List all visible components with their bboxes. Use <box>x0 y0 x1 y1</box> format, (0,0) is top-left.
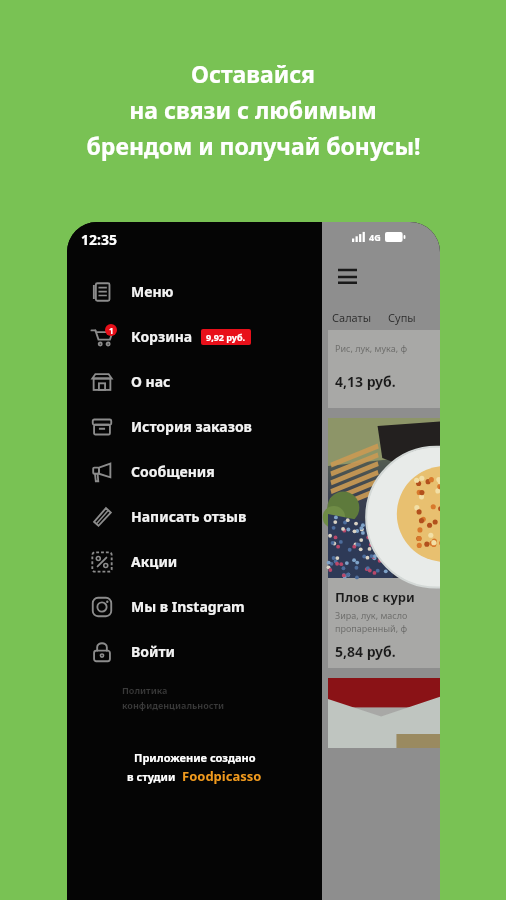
staticText: Рис, лук, мука, ф <box>335 342 408 354</box>
button[interactable]: Салаты <box>332 310 372 325</box>
staticText: Меню <box>131 282 174 301</box>
staticText: 1 <box>109 325 114 336</box>
button[interactable]: Мы в Instagram <box>67 584 322 629</box>
button[interactable]: Плов с кури <box>328 418 440 668</box>
button[interactable]: Сообщения <box>67 449 322 494</box>
button[interactable]: История заказов <box>67 404 322 449</box>
staticText: Написать отзыв <box>131 507 247 526</box>
button[interactable]: О нас <box>67 359 322 404</box>
staticText: Плов с кури <box>335 588 415 606</box>
button[interactable]: Супы <box>388 310 416 325</box>
button[interactable]: Акции <box>67 539 322 584</box>
staticText: 12:35 <box>81 230 117 249</box>
staticText: Приложение создано <box>134 750 256 765</box>
staticText: Сообщения <box>131 462 215 481</box>
staticText: пропаренный, ф <box>335 622 408 634</box>
button[interactable]: Войти <box>67 629 322 674</box>
button[interactable]: конфиденциальности <box>122 699 225 711</box>
staticText: О нас <box>131 372 171 391</box>
staticText: 5,84 руб. <box>335 642 396 661</box>
staticText: История заказов <box>131 417 252 436</box>
staticText: в студии <box>127 769 176 784</box>
button[interactable]: Написать отзыв <box>67 494 322 539</box>
staticText: Мы в Instagram <box>131 597 245 616</box>
button[interactable]: Рис, лук, мука, ф <box>328 330 440 408</box>
button[interactable]: 1 <box>67 314 322 359</box>
staticText: Зира, лук, масло <box>335 609 408 621</box>
staticText: Политика <box>122 684 168 696</box>
button[interactable]: Open navigation menu <box>332 262 362 292</box>
staticText: Войти <box>131 642 175 661</box>
staticText: Акции <box>131 552 178 571</box>
staticText: 4,13 руб. <box>335 372 396 391</box>
staticText: Корзина <box>131 327 193 346</box>
button[interactable] <box>328 678 440 748</box>
button[interactable]: Foodpicasso <box>182 767 262 785</box>
button[interactable]: Меню <box>67 269 322 314</box>
staticText: 4G <box>369 231 381 243</box>
staticText: на связи с любимым <box>129 94 377 125</box>
staticText: брендом и получай бонусы! <box>86 130 421 161</box>
staticText: Оставайся <box>191 58 315 89</box>
staticText: 9,92 руб. <box>206 331 246 343</box>
